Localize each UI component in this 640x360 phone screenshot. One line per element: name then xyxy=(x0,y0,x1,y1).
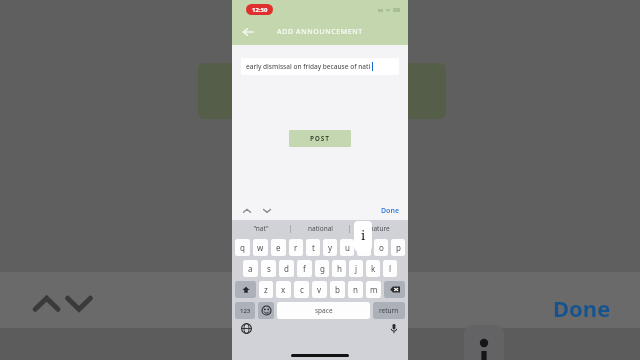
button[interactable]: h xyxy=(332,260,346,277)
staticText: e xyxy=(276,242,281,253)
staticText: "nat" xyxy=(253,224,269,233)
button[interactable]: r xyxy=(289,239,303,256)
staticText: y xyxy=(328,242,333,253)
button[interactable]: e xyxy=(271,239,286,256)
button[interactable]: y xyxy=(323,239,337,256)
button[interactable]: Previous field xyxy=(242,206,252,216)
staticText: 12:50 xyxy=(252,6,268,14)
button[interactable]: k xyxy=(366,260,380,277)
staticText: j xyxy=(355,263,358,274)
staticText: b xyxy=(335,284,340,295)
staticText: c xyxy=(300,284,304,295)
staticText: 123 xyxy=(240,307,251,315)
staticText: z xyxy=(264,284,268,295)
staticText: w xyxy=(257,242,264,253)
staticText: r xyxy=(294,242,298,253)
button[interactable]: n xyxy=(348,281,363,298)
staticText: x xyxy=(281,284,286,295)
staticText: ADD ANNOUNCEMENT xyxy=(277,27,363,37)
button[interactable]: f xyxy=(297,260,312,277)
staticText: k xyxy=(371,263,376,274)
button[interactable]: Next field xyxy=(262,206,272,216)
staticText: n xyxy=(353,284,358,295)
button[interactable]: d xyxy=(279,260,294,277)
button[interactable]: i xyxy=(357,239,371,256)
button[interactable]: s xyxy=(261,260,276,277)
staticText: h xyxy=(337,263,342,274)
staticText: f xyxy=(303,263,306,274)
button[interactable]: POST xyxy=(289,130,351,147)
button[interactable]: Backspace xyxy=(384,281,405,298)
button[interactable]: x xyxy=(276,281,291,298)
button[interactable]: z xyxy=(259,281,273,298)
button[interactable]: c xyxy=(294,281,309,298)
button[interactable]: l xyxy=(383,260,397,277)
button[interactable]: space xyxy=(277,302,370,319)
staticText: space xyxy=(315,306,333,315)
staticText: g xyxy=(320,263,325,274)
button[interactable]: g xyxy=(315,260,329,277)
staticText: d xyxy=(284,263,289,274)
button[interactable]: nature xyxy=(350,220,408,237)
button[interactable]: 123 xyxy=(235,302,255,319)
button[interactable]: t xyxy=(306,239,320,256)
staticText: m xyxy=(370,284,378,295)
staticText: o xyxy=(379,242,384,253)
staticText: nature xyxy=(369,224,390,233)
staticText: a xyxy=(248,263,253,274)
button[interactable]: o xyxy=(374,239,388,256)
button[interactable]: m xyxy=(366,281,381,298)
button[interactable]: p xyxy=(391,239,405,256)
button[interactable]: q xyxy=(235,239,250,256)
staticText: return xyxy=(379,306,399,315)
staticText: v xyxy=(317,284,322,295)
staticText: national xyxy=(308,224,333,233)
staticText: l xyxy=(389,263,392,274)
button[interactable]: Dictation xyxy=(390,323,398,334)
button[interactable]: return xyxy=(373,302,405,319)
staticText: Done xyxy=(381,206,400,216)
staticText: t xyxy=(312,242,315,253)
button[interactable]: Change keyboard xyxy=(241,323,252,334)
button[interactable]: Done xyxy=(381,206,400,216)
button[interactable]: Back xyxy=(240,24,256,40)
staticText: Done xyxy=(553,293,611,323)
button[interactable]: Shift xyxy=(235,281,256,298)
button[interactable]: w xyxy=(253,239,268,256)
staticText: q xyxy=(240,242,245,253)
button[interactable]: u xyxy=(340,239,354,256)
button[interactable]: national xyxy=(291,220,349,237)
button[interactable]: v xyxy=(312,281,327,298)
staticText: early dismissal on friday because of nat… xyxy=(246,62,371,71)
staticText: i xyxy=(361,226,366,244)
button[interactable]: "nat" xyxy=(232,220,290,237)
staticText: POST xyxy=(310,134,330,143)
button[interactable]: b xyxy=(330,281,345,298)
button[interactable]: early dismissal on friday because of nat… xyxy=(241,58,399,75)
button[interactable]: Emoji xyxy=(258,302,274,319)
button[interactable]: j xyxy=(349,260,363,277)
button[interactable]: a xyxy=(243,260,258,277)
staticText: p xyxy=(396,242,401,253)
staticText: s xyxy=(267,263,271,274)
staticText: u xyxy=(345,242,350,253)
